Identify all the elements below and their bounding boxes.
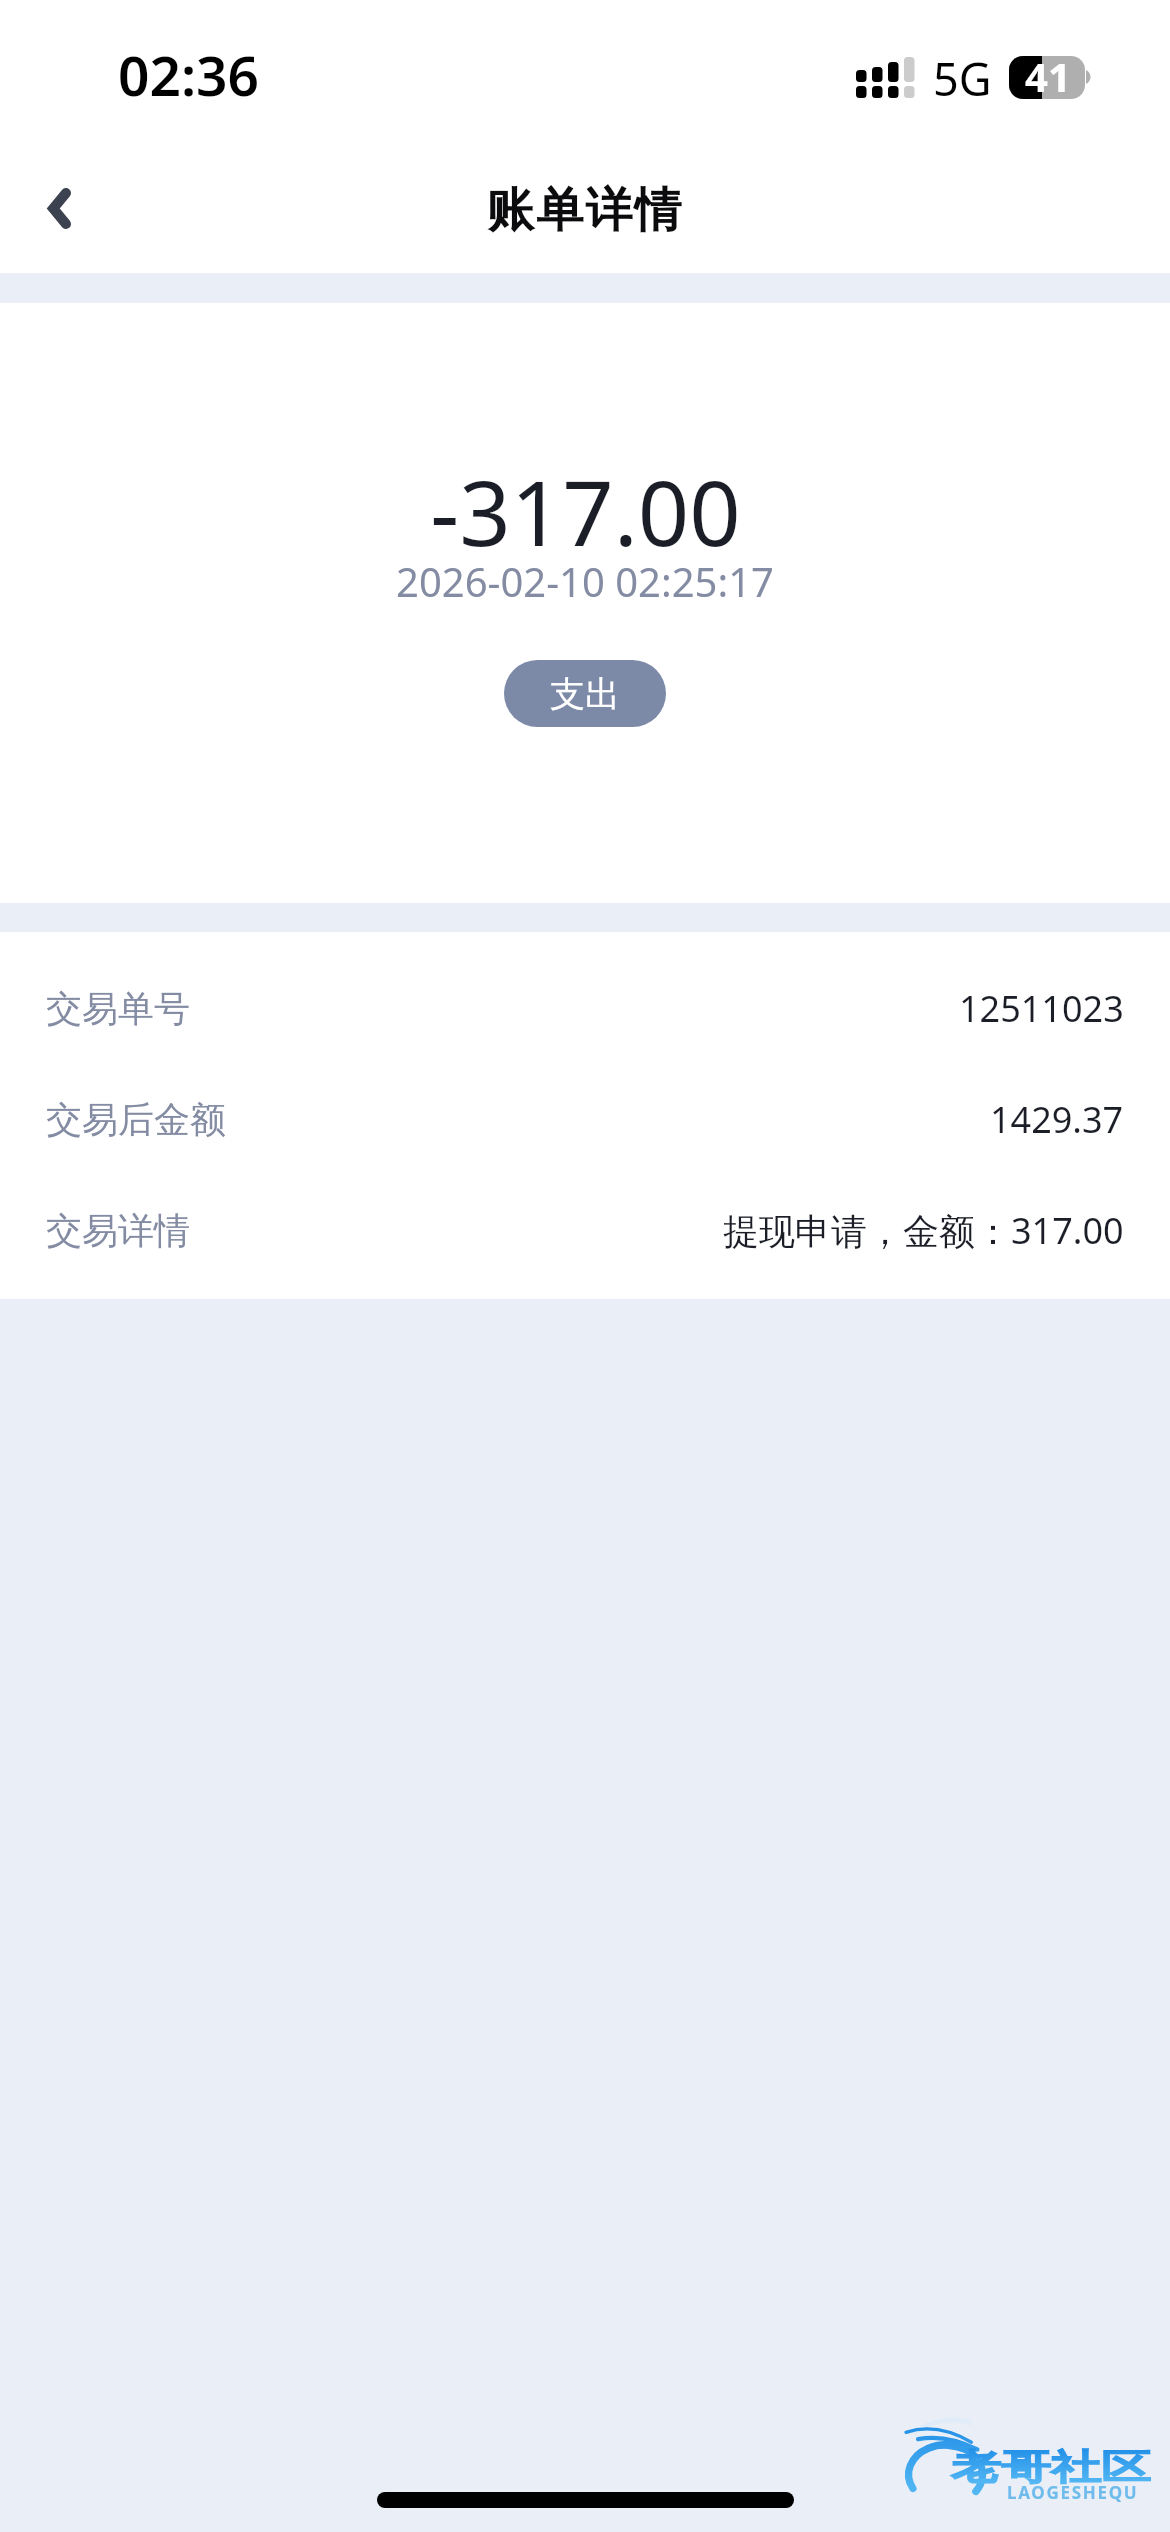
staticText: 账单详情: [487, 181, 684, 240]
staticText: 支出: [550, 672, 620, 716]
button[interactable]: Back: [12, 144, 112, 244]
staticText: 老哥社区: [951, 2445, 1151, 2489]
staticText: 交易后金额: [46, 1097, 226, 1142]
button[interactable]: 交易后金额: [0, 1064, 1170, 1175]
button[interactable]: 交易单号: [0, 953, 1170, 1064]
staticText: 12511023: [959, 984, 1124, 1033]
staticText: 交易单号: [46, 986, 190, 1031]
staticText: 2026-02-10 02:25:17: [396, 554, 774, 608]
button[interactable]: 支出: [504, 660, 666, 727]
staticText: 1429.37: [990, 1095, 1124, 1144]
button[interactable]: 交易详情: [0, 1175, 1170, 1286]
staticText: LAOGESHEQU: [1007, 2481, 1139, 2504]
staticText: 02:36: [118, 37, 260, 112]
staticText: 41: [1025, 49, 1071, 103]
staticText: -317.00: [430, 450, 741, 573]
staticText: 5G: [933, 48, 992, 109]
staticText: 交易详情: [46, 1208, 190, 1253]
staticText: 提现申请，金额：317.00: [723, 1206, 1124, 1255]
